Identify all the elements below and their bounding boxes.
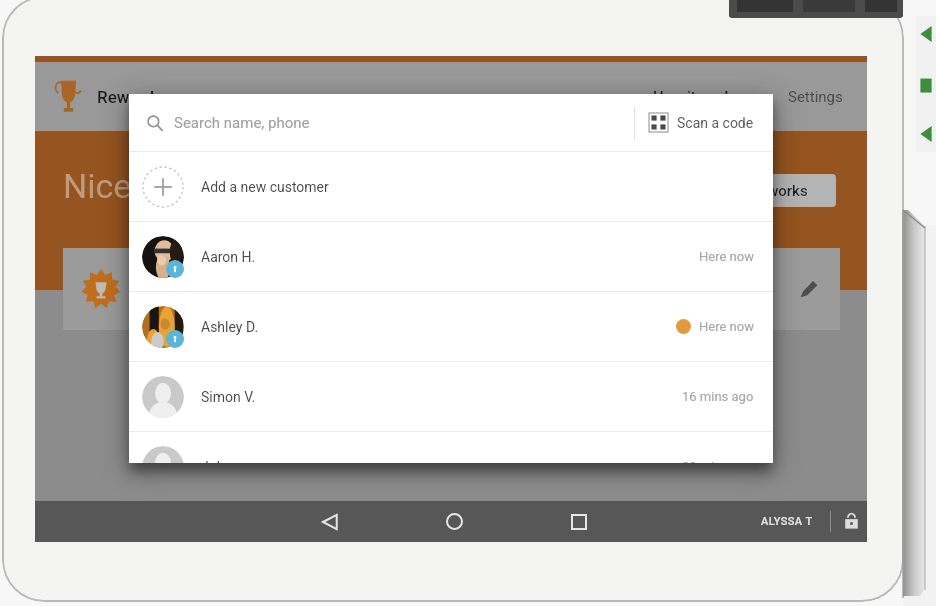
button[interactable]: Ashley D. [129, 292, 773, 361]
button[interactable]: Recent apps [558, 501, 599, 542]
button[interactable]: Simon V. [129, 362, 773, 431]
button[interactable]: Home [434, 501, 475, 542]
button[interactable]: Back [309, 501, 350, 542]
button[interactable]: How it works [653, 62, 741, 131]
button[interactable]: Aaron H. [129, 222, 773, 291]
staticText: ALYSSA T [761, 515, 813, 528]
staticText: Aaron H. [201, 249, 256, 265]
staticText: Simon V. [201, 389, 256, 405]
staticText: 16 mins ago [682, 389, 754, 404]
staticText: How it works [653, 88, 741, 106]
staticText: 20 mins ago [682, 459, 754, 463]
staticText: Rewards [97, 87, 163, 107]
staticText: Settings [788, 88, 843, 106]
button[interactable]: Lock screen [836, 501, 866, 542]
staticText: John [201, 459, 233, 463]
staticText: Ashley D. [201, 319, 259, 335]
staticText: Add a new customer [201, 179, 329, 195]
button[interactable]: Add a new customer [129, 152, 773, 221]
button[interactable]: John [129, 432, 773, 463]
button[interactable]: Settings [788, 62, 843, 131]
staticText: Scan a code [677, 115, 754, 131]
button[interactable]: ALYSSA T [761, 501, 813, 542]
staticText: See how it works [694, 182, 808, 200]
staticText: Nice! [63, 166, 141, 206]
staticText: Here now [699, 319, 754, 334]
button[interactable]: See how it works [666, 174, 836, 207]
staticText: Search name, phone [174, 114, 310, 132]
staticText: Here now [699, 249, 754, 264]
button[interactable]: Scan a code [635, 94, 768, 151]
